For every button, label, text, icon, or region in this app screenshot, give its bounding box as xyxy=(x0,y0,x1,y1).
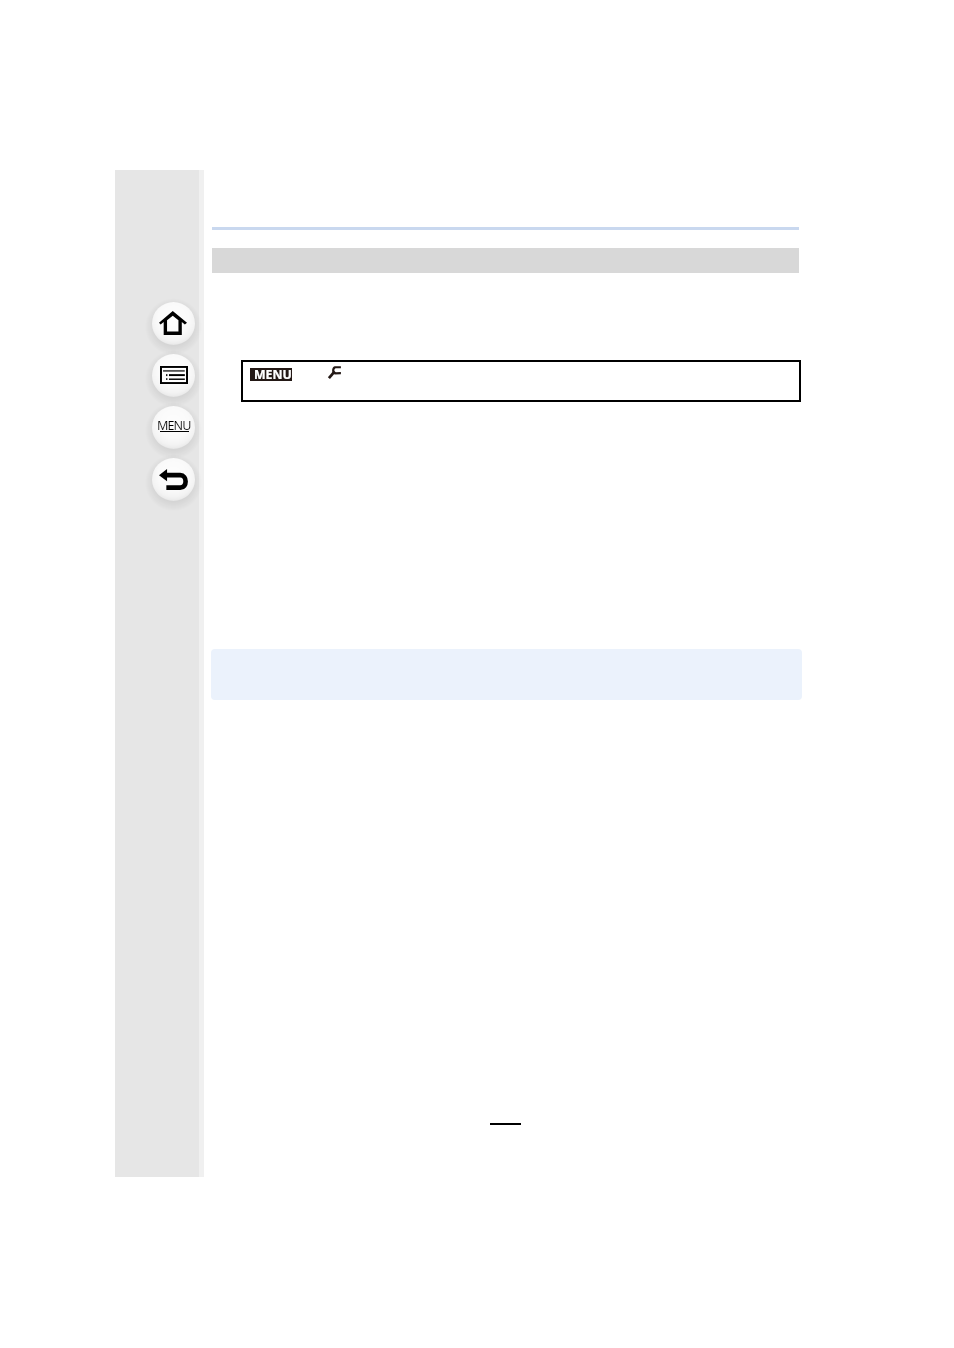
button[interactable]: Table of contents xyxy=(145,347,202,404)
staticText: MENU xyxy=(157,417,191,434)
staticText: MENU xyxy=(254,366,292,379)
button[interactable]: Home xyxy=(145,295,202,352)
button[interactable]: MENU xyxy=(241,360,801,402)
button[interactable]: Menu xyxy=(145,399,202,456)
button[interactable]: Back xyxy=(145,451,202,508)
